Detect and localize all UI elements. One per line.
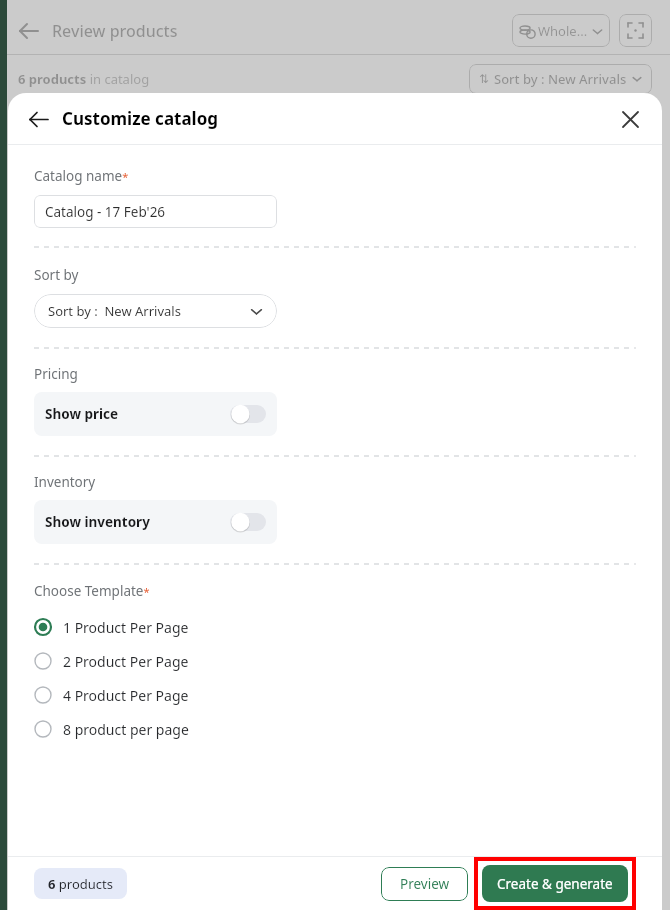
button[interactable]: Create & generate xyxy=(482,865,628,902)
staticText: Review products xyxy=(52,20,178,42)
staticText: Create & generate xyxy=(497,875,613,893)
button[interactable]: ⇅ xyxy=(479,64,642,94)
staticText: Catalog - 17 Feb'26 xyxy=(45,203,166,221)
button[interactable]: Scan xyxy=(619,14,652,47)
staticText: Sort by : New Arrivals xyxy=(48,302,181,320)
staticText: 6 products xyxy=(48,875,113,893)
staticText: 8 product per page xyxy=(63,720,189,739)
button[interactable]: Preview xyxy=(381,867,468,901)
button[interactable]: Catalog - 17 Feb'26 xyxy=(34,195,277,228)
staticText: ⇅ xyxy=(479,72,490,86)
staticText: Sort by : New Arrivals xyxy=(494,70,627,88)
button[interactable]: Sort by : New Arrivals xyxy=(34,294,277,328)
staticText: Pricing xyxy=(34,365,78,383)
staticText: 6 products in catalog xyxy=(18,70,150,88)
staticText: Customize catalog xyxy=(62,107,219,130)
staticText: Inventory xyxy=(34,473,96,491)
staticText: 2 Product Per Page xyxy=(63,652,189,671)
button[interactable]: 4 Product Per Page xyxy=(34,678,636,712)
staticText: Catalog name* xyxy=(34,167,129,185)
staticText: Sort by xyxy=(34,266,79,284)
staticText: Show price xyxy=(45,405,119,423)
button[interactable]: Show price xyxy=(45,392,266,436)
staticText: Preview xyxy=(400,875,450,893)
button[interactable]: Whole... xyxy=(512,14,610,47)
button[interactable]: 2 Product Per Page xyxy=(34,644,636,678)
button[interactable]: 6 products xyxy=(48,868,113,899)
staticText: 4 Product Per Page xyxy=(63,686,189,705)
button[interactable]: Show inventory xyxy=(45,500,266,544)
button[interactable]: 8 product per page xyxy=(34,712,636,746)
staticText: Whole... xyxy=(538,22,588,40)
button[interactable]: Close xyxy=(616,105,644,133)
staticText: Choose Template* xyxy=(34,582,150,600)
button[interactable]: Back xyxy=(26,107,50,131)
button[interactable]: 1 Product Per Page xyxy=(34,610,636,644)
staticText: 1 Product Per Page xyxy=(63,618,189,637)
staticText: Show inventory xyxy=(45,513,150,531)
